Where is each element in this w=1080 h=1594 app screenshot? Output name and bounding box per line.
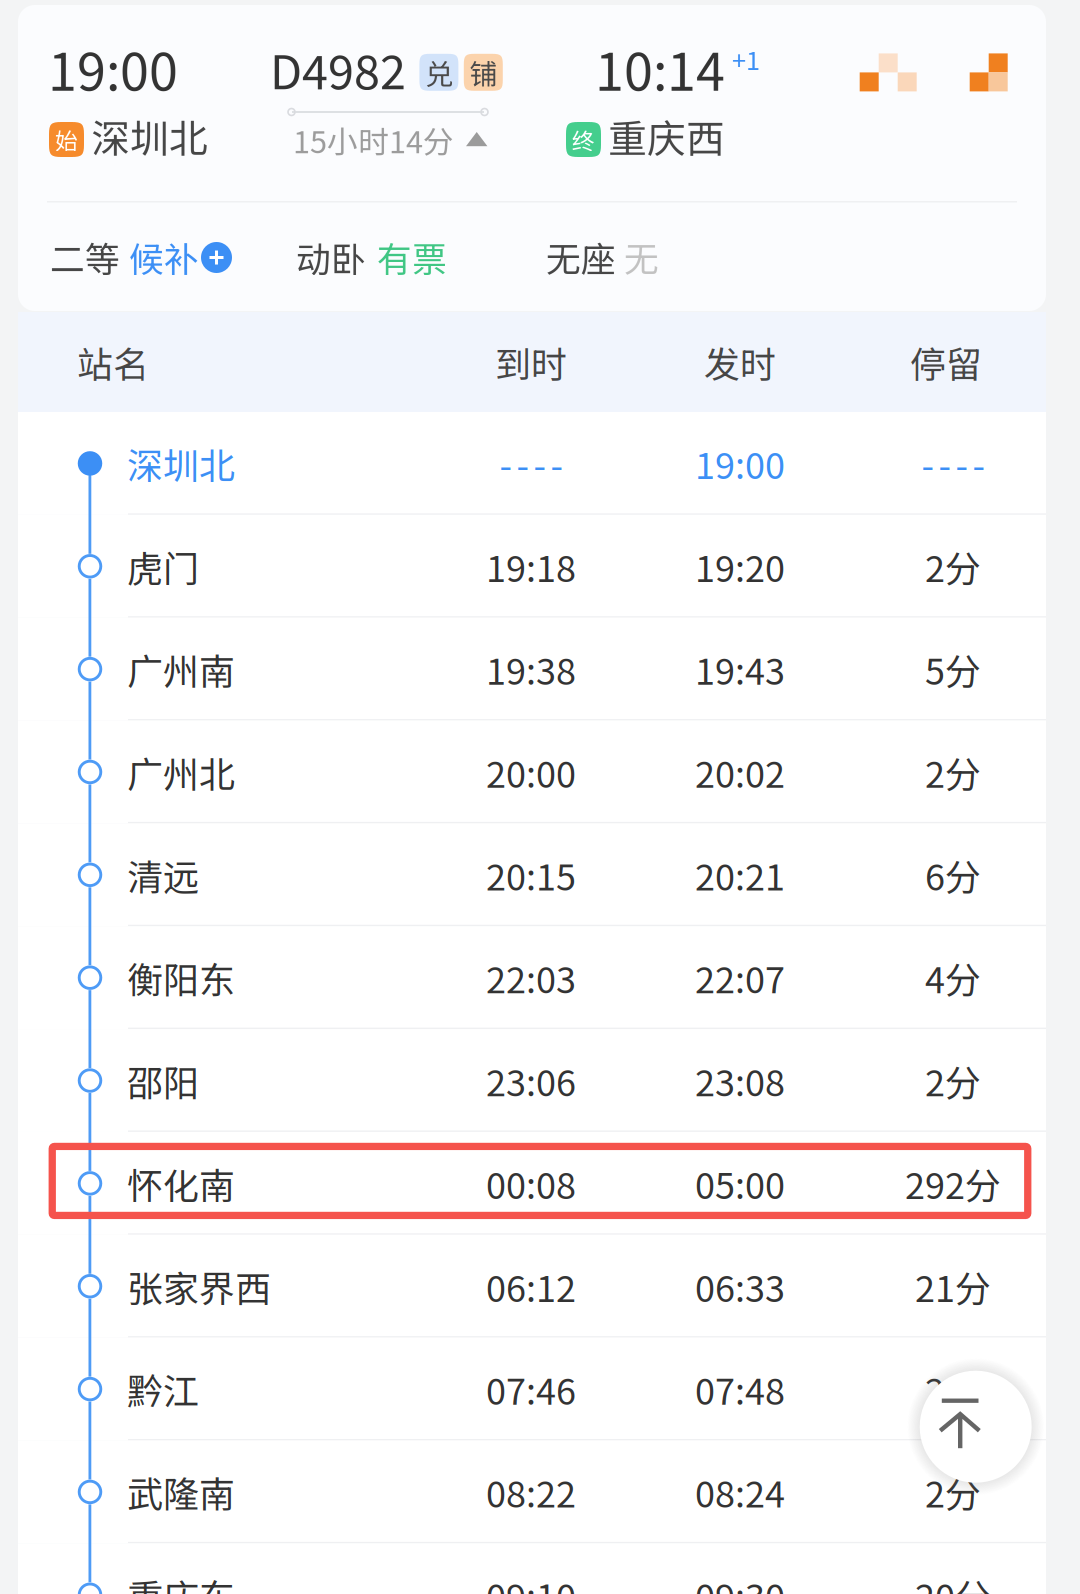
staticText: 广州北 <box>127 746 235 798</box>
staticText: 10:14 <box>595 30 725 106</box>
staticText: 邵阳 <box>127 1054 199 1107</box>
staticText: 停留 <box>910 336 982 388</box>
staticText: 深圳北 <box>91 108 208 164</box>
staticText: 终 <box>572 123 595 156</box>
staticText: 无 <box>624 232 659 282</box>
staticText: 21分 <box>915 1260 991 1312</box>
staticText: 张家界西 <box>127 1260 271 1312</box>
staticText: 19:00 <box>48 30 178 106</box>
staticText: 重庆西 <box>608 108 725 164</box>
staticText: 4分 <box>925 952 981 1004</box>
staticText: 兑 <box>425 52 453 92</box>
staticText: 2分 <box>925 1466 981 1518</box>
staticText: 动卧 <box>296 232 366 282</box>
staticText: 到时 <box>495 336 567 388</box>
staticText: 00:08 <box>486 1157 576 1209</box>
staticText: 07:46 <box>486 1363 576 1415</box>
staticText: 2分 <box>925 1363 981 1415</box>
staticText: 19:00 <box>695 437 785 489</box>
button[interactable]: 怀化南 <box>18 1132 1046 1235</box>
staticText: 2分 <box>925 746 981 798</box>
staticText: 2分 <box>925 1054 981 1107</box>
staticText: 深圳北 <box>127 437 235 489</box>
staticText: 08:24 <box>695 1466 785 1518</box>
staticText: 5分 <box>925 643 981 695</box>
staticText: 6分 <box>925 849 981 901</box>
button[interactable]: 广州北 <box>18 720 1046 823</box>
staticText: 站名 <box>77 336 149 388</box>
button[interactable]: 黔江 <box>18 1338 1046 1440</box>
staticText: 20:02 <box>695 746 785 798</box>
staticText: 清远 <box>127 849 199 901</box>
staticText: 广州南 <box>127 643 235 695</box>
staticText: 重庆东 <box>127 1569 235 1594</box>
staticText: 08:22 <box>486 1466 576 1518</box>
staticText: 19:38 <box>486 643 576 695</box>
button[interactable]: 清远 <box>18 823 1046 926</box>
staticText: 始 <box>55 123 78 156</box>
staticText: 黔江 <box>127 1363 199 1415</box>
button[interactable]: 衡阳东 <box>18 926 1046 1029</box>
staticText: 292分 <box>905 1157 1001 1209</box>
staticText: 19:18 <box>486 540 576 592</box>
staticText: 22:07 <box>695 952 785 1004</box>
staticText: 铺 <box>469 52 497 92</box>
staticText: 怀化南 <box>127 1157 235 1209</box>
staticText: 20:21 <box>695 849 785 901</box>
staticText: 19:43 <box>695 643 785 695</box>
button[interactable]: 邵阳 <box>18 1029 1046 1132</box>
button[interactable]: 重庆东 <box>18 1543 1046 1594</box>
staticText: 20:15 <box>486 849 576 901</box>
staticText: 15小时14分 <box>293 118 454 162</box>
button[interactable]: 虎门 <box>18 515 1046 618</box>
staticText: D4982 <box>270 35 406 103</box>
staticText: 20分 <box>915 1569 991 1594</box>
staticText: 无座 <box>546 232 616 282</box>
staticText: 09:10 <box>486 1569 576 1594</box>
staticText: 05:00 <box>695 1157 785 1209</box>
staticText: 06:33 <box>695 1260 785 1312</box>
button[interactable]: 广州南 <box>18 618 1046 720</box>
staticText: 发时 <box>704 336 776 388</box>
button[interactable]: 张家界西 <box>18 1235 1046 1338</box>
button[interactable]: 19:00 <box>18 5 1046 311</box>
staticText: 有票 <box>377 232 447 282</box>
staticText: 2分 <box>925 540 981 592</box>
button[interactable]: Scroll to top <box>907 1358 1045 1496</box>
staticText: 22:03 <box>486 952 576 1004</box>
staticText: 衡阳东 <box>127 952 235 1004</box>
staticText: 候补 <box>129 232 199 282</box>
staticText: 虎门 <box>127 540 199 592</box>
staticText: 06:12 <box>486 1260 576 1312</box>
staticText: 武隆南 <box>127 1466 235 1518</box>
staticText: 23:08 <box>695 1054 785 1107</box>
staticText: 07:48 <box>695 1363 785 1415</box>
staticText: ---- <box>921 437 984 489</box>
staticText: ---- <box>499 437 562 489</box>
staticText: +1 <box>732 41 760 77</box>
staticText: 23:06 <box>486 1054 576 1107</box>
staticText: 二等 <box>50 232 120 282</box>
button[interactable]: 武隆南 <box>18 1440 1046 1543</box>
staticText: 19:20 <box>695 540 785 592</box>
button[interactable]: 深圳北 <box>18 412 1046 515</box>
staticText: 20:00 <box>486 746 576 798</box>
staticText: 09:30 <box>695 1569 785 1594</box>
